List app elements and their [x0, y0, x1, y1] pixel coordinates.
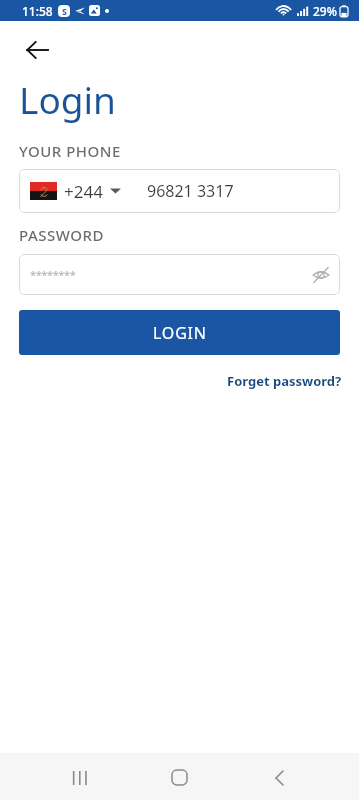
staticText: ********: [30, 267, 76, 282]
staticText: PASSWORD: [19, 225, 104, 245]
button[interactable]: Home: [156, 754, 203, 800]
button[interactable]: Back: [256, 754, 303, 800]
staticText: Forget password?: [227, 372, 342, 390]
button[interactable]: Recent apps: [55, 754, 102, 800]
button[interactable]: +244: [19, 169, 340, 213]
staticText: 29%: [313, 3, 337, 19]
staticText: S: [62, 5, 67, 17]
staticText: 96821 3317: [147, 180, 234, 202]
staticText: LOGIN: [153, 322, 207, 344]
button[interactable]: Show password: [306, 260, 336, 290]
staticText: Login: [19, 74, 116, 124]
staticText: +244: [64, 180, 103, 203]
staticText: YOUR PHONE: [19, 141, 121, 161]
button[interactable]: LOGIN: [19, 310, 340, 355]
staticText: 11:58: [22, 3, 53, 19]
button[interactable]: Back: [13, 26, 61, 74]
button[interactable]: ********: [19, 254, 340, 295]
button[interactable]: Forget password?: [227, 372, 342, 390]
